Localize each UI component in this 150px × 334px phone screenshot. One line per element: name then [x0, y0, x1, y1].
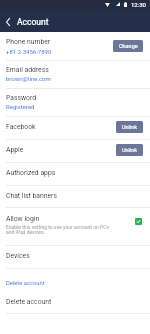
button[interactable]: Unlink	[116, 144, 143, 156]
staticText: Facebook	[6, 123, 36, 131]
staticText: Allow login	[6, 215, 40, 223]
staticText: Change	[119, 43, 138, 49]
button[interactable]	[0, 207, 150, 245]
staticText: Delete account	[6, 298, 52, 306]
staticText: brown@line.com	[6, 75, 51, 82]
staticText: Unlink	[122, 147, 138, 153]
button[interactable]	[0, 291, 150, 313]
button[interactable]	[0, 245, 150, 268]
staticText: Account	[17, 17, 49, 27]
button[interactable]	[0, 185, 150, 208]
button[interactable]: Unlink	[116, 121, 143, 133]
staticText: Phone number	[6, 38, 51, 46]
button[interactable]	[0, 139, 150, 162]
staticText: 12:30	[131, 1, 146, 8]
staticText: Password	[6, 94, 37, 102]
staticText: Delete account	[6, 280, 45, 287]
staticText: Apple	[6, 146, 24, 154]
staticText: Registered	[6, 103, 35, 110]
button[interactable]: Change	[113, 40, 143, 52]
button[interactable]: Allow login checkbox	[135, 218, 142, 225]
staticText: +81 2-3456-7890	[6, 48, 52, 55]
staticText: Authorized apps	[6, 169, 56, 177]
button[interactable]	[0, 60, 150, 88]
staticText: Chat list banners	[6, 192, 57, 200]
staticText: Enable this setting to use your account …	[6, 224, 118, 235]
button[interactable]	[0, 268, 150, 291]
staticText: Unlink	[122, 124, 138, 130]
button[interactable]	[0, 32, 150, 60]
staticText: Email address	[6, 66, 49, 74]
button[interactable]: Back	[0, 14, 16, 30]
staticText: Devices	[6, 252, 30, 260]
button[interactable]	[0, 88, 150, 116]
button[interactable]	[0, 116, 150, 139]
button[interactable]	[0, 162, 150, 185]
